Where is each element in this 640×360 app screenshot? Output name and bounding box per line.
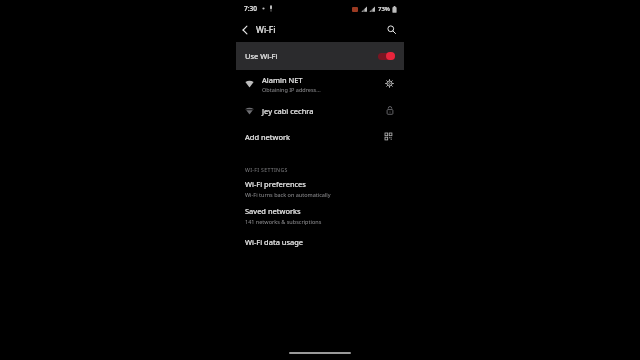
staticText: Add network (245, 132, 383, 142)
button[interactable]: Jey cabi cechra (236, 97, 404, 124)
staticText: Jey cabi cechra (262, 106, 314, 116)
staticText: Wi-Fi preferences (245, 179, 306, 189)
staticText: 7:30 (244, 4, 257, 13)
button[interactable]: Add network (236, 124, 404, 150)
button[interactable]: Scan QR code (383, 131, 396, 144)
button[interactable]: Back (236, 21, 252, 39)
button[interactable]: Saved networks (236, 202, 404, 229)
staticText: Alamin NET (262, 75, 303, 85)
staticText: Saved networks (245, 206, 301, 216)
other: Secured network (384, 104, 396, 117)
staticText: 73% (378, 5, 390, 13)
button[interactable]: Wi-Fi data usage (236, 229, 404, 255)
staticText: 141 networks & subscriptions (245, 218, 322, 225)
staticText: Obtaining IP address... (262, 86, 321, 93)
staticText: Wi-Fi data usage (245, 237, 304, 247)
staticText: Use Wi-Fi (245, 51, 378, 61)
staticText: Wi-Fi (256, 24, 276, 36)
button[interactable]: Alamin NET (236, 70, 404, 97)
staticText: Wi-Fi turns back on automatically (245, 191, 331, 198)
button[interactable]: Wi-Fi preferences (236, 175, 404, 202)
button[interactable]: Search (381, 20, 404, 39)
staticText: WI-FI SETTINGS (245, 166, 288, 173)
button[interactable]: Use Wi-Fi (236, 42, 404, 70)
button[interactable]: Network settings (383, 77, 396, 90)
